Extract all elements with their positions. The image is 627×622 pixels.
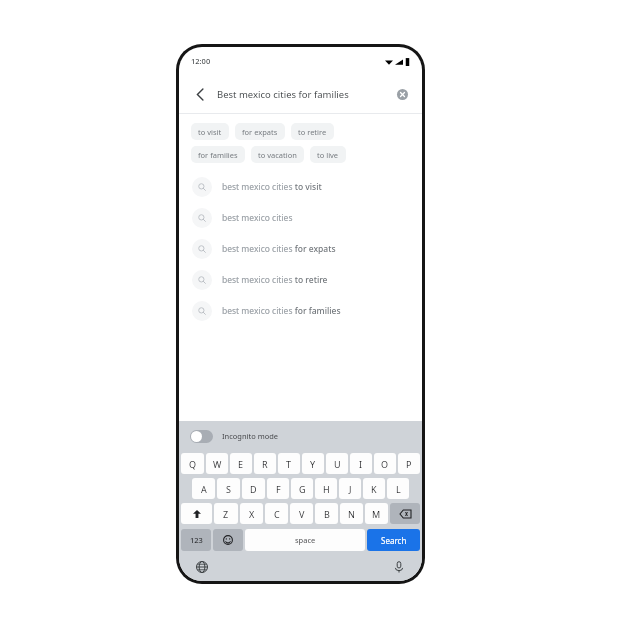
staticText: P xyxy=(406,458,412,470)
staticText: best mexico cities for expats xyxy=(222,243,336,255)
button[interactable]: C xyxy=(265,503,288,524)
button[interactable]: 123 xyxy=(181,529,211,551)
button[interactable]: D xyxy=(242,478,265,499)
button[interactable]: G xyxy=(291,478,313,499)
staticText: K xyxy=(371,483,377,495)
button[interactable]: V xyxy=(290,503,313,524)
button[interactable]: K xyxy=(363,478,385,499)
button[interactable]: R xyxy=(254,453,276,474)
button[interactable]: best mexico cities for expats xyxy=(179,233,422,264)
button[interactable]: to live xyxy=(310,146,346,163)
button[interactable]: Change language xyxy=(193,558,211,576)
staticText: C xyxy=(274,508,280,520)
button[interactable]: to retire xyxy=(291,123,334,140)
staticText: T xyxy=(286,458,292,470)
button[interactable]: Back xyxy=(190,84,210,104)
staticText: Y xyxy=(310,458,316,470)
staticText: Z xyxy=(223,508,229,520)
button[interactable]: Backspace xyxy=(390,503,420,524)
staticText: to retire xyxy=(298,127,327,137)
staticText: Search xyxy=(381,535,407,546)
button[interactable]: space xyxy=(245,529,365,551)
staticText: J xyxy=(349,483,352,495)
staticText: 12:00 xyxy=(191,56,211,66)
button[interactable]: L xyxy=(387,478,409,499)
button[interactable]: F xyxy=(267,478,289,499)
button[interactable]: best mexico cities to visit xyxy=(179,171,422,202)
staticText: L xyxy=(396,483,401,495)
button[interactable]: Z xyxy=(214,503,238,524)
staticText: F xyxy=(276,483,281,495)
button[interactable]: Q xyxy=(181,453,204,474)
staticText: X xyxy=(249,508,255,520)
staticText: to vacation xyxy=(258,150,297,160)
button[interactable]: Search xyxy=(367,529,420,551)
staticText: for families xyxy=(198,150,238,160)
staticText: V xyxy=(299,508,305,520)
button[interactable]: S xyxy=(217,478,240,499)
staticText: O xyxy=(381,458,389,470)
button[interactable] xyxy=(190,430,213,443)
staticText: A xyxy=(201,483,207,495)
button[interactable]: for expats xyxy=(235,123,285,140)
staticText: best mexico cities for families xyxy=(222,305,341,317)
button[interactable]: W xyxy=(206,453,228,474)
button[interactable]: B xyxy=(315,503,338,524)
button[interactable]: to vacation xyxy=(251,146,304,163)
button[interactable]: O xyxy=(374,453,396,474)
staticText: R xyxy=(262,458,268,470)
button[interactable]: J xyxy=(339,478,361,499)
button[interactable]: best mexico cities to retire xyxy=(179,264,422,295)
button[interactable]: Shift xyxy=(181,503,212,524)
button[interactable]: M xyxy=(365,503,388,524)
button[interactable]: P xyxy=(398,453,420,474)
staticText: G xyxy=(299,483,306,495)
button[interactable]: H xyxy=(315,478,337,499)
staticText: space xyxy=(295,535,316,545)
button[interactable]: for families xyxy=(191,146,245,163)
button[interactable]: U xyxy=(326,453,348,474)
staticText: E xyxy=(238,458,244,470)
staticText: 123 xyxy=(190,535,203,545)
staticText: W xyxy=(213,458,222,470)
staticText: for expats xyxy=(242,127,278,137)
staticText: Incognito mode xyxy=(222,431,279,441)
staticText: best mexico cities to visit xyxy=(222,181,322,193)
staticText: N xyxy=(348,508,355,520)
staticText: U xyxy=(334,458,341,470)
staticText: Best mexico cities for families xyxy=(217,88,393,101)
button[interactable]: best mexico cities xyxy=(179,202,422,233)
staticText: H xyxy=(323,483,330,495)
staticText: B xyxy=(324,508,330,520)
staticText: best mexico cities xyxy=(222,212,293,224)
button[interactable]: I xyxy=(350,453,372,474)
staticText: M xyxy=(372,508,381,520)
staticText: to live xyxy=(317,150,339,160)
button[interactable]: best mexico cities for families xyxy=(179,295,422,326)
button[interactable]: X xyxy=(240,503,263,524)
staticText: I xyxy=(359,458,363,470)
button[interactable]: to visit xyxy=(191,123,229,140)
staticText: Q xyxy=(189,458,197,470)
button[interactable]: N xyxy=(340,503,363,524)
button[interactable]: A xyxy=(192,478,215,499)
button[interactable]: E xyxy=(230,453,252,474)
button[interactable]: Clear xyxy=(393,85,411,103)
button[interactable]: T xyxy=(278,453,300,474)
button[interactable]: Emoji xyxy=(213,529,243,551)
staticText: best mexico cities to retire xyxy=(222,274,328,286)
staticText: S xyxy=(226,483,231,495)
staticText: to visit xyxy=(198,127,222,137)
staticText: D xyxy=(250,483,257,495)
button[interactable]: Voice input xyxy=(390,558,408,576)
button[interactable]: Y xyxy=(302,453,324,474)
